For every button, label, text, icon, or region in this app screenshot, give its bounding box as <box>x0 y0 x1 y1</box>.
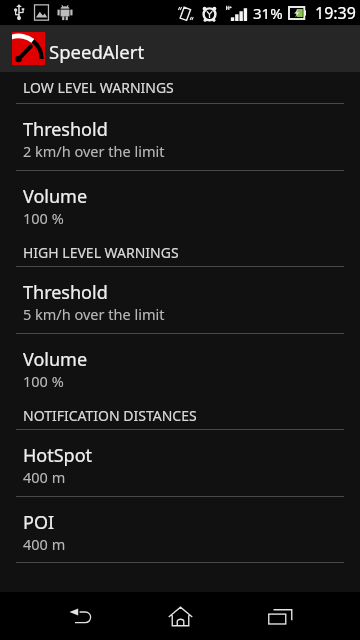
button[interactable]: Threshold <box>0 267 360 333</box>
staticText: 31% <box>253 3 283 23</box>
button[interactable]: Volume <box>0 334 360 401</box>
staticText: Threshold <box>23 117 108 142</box>
button[interactable]: Recent apps <box>240 592 320 640</box>
staticText: Threshold <box>23 280 108 305</box>
staticText: Volume <box>23 347 88 372</box>
button[interactable]: POI <box>0 497 360 562</box>
button[interactable]: SpeedAlert app icon <box>12 32 45 65</box>
button[interactable]: HotSpot <box>0 430 360 496</box>
staticText: 400 m <box>23 534 66 554</box>
staticText: NOTIFICATION DISTANCES <box>23 406 197 425</box>
staticText: 19:39 <box>315 2 356 24</box>
staticText: 400 m <box>23 467 66 487</box>
staticText: 100 % <box>23 208 64 228</box>
staticText: SpeedAlert <box>49 39 145 64</box>
button[interactable]: Home <box>140 592 220 640</box>
button[interactable]: Threshold <box>0 104 360 170</box>
staticText: HIGH LEVEL WARNINGS <box>23 243 179 262</box>
button[interactable]: Back <box>40 592 120 640</box>
staticText: 2 km/h over the limit <box>23 141 165 161</box>
button[interactable]: Volume <box>0 171 360 238</box>
staticText: 5 km/h over the limit <box>23 304 165 324</box>
staticText: HotSpot <box>23 443 93 468</box>
staticText: Volume <box>23 184 88 209</box>
staticText: POI <box>23 510 55 535</box>
staticText: LOW LEVEL WARNINGS <box>23 78 174 97</box>
staticText: 100 % <box>23 371 64 391</box>
